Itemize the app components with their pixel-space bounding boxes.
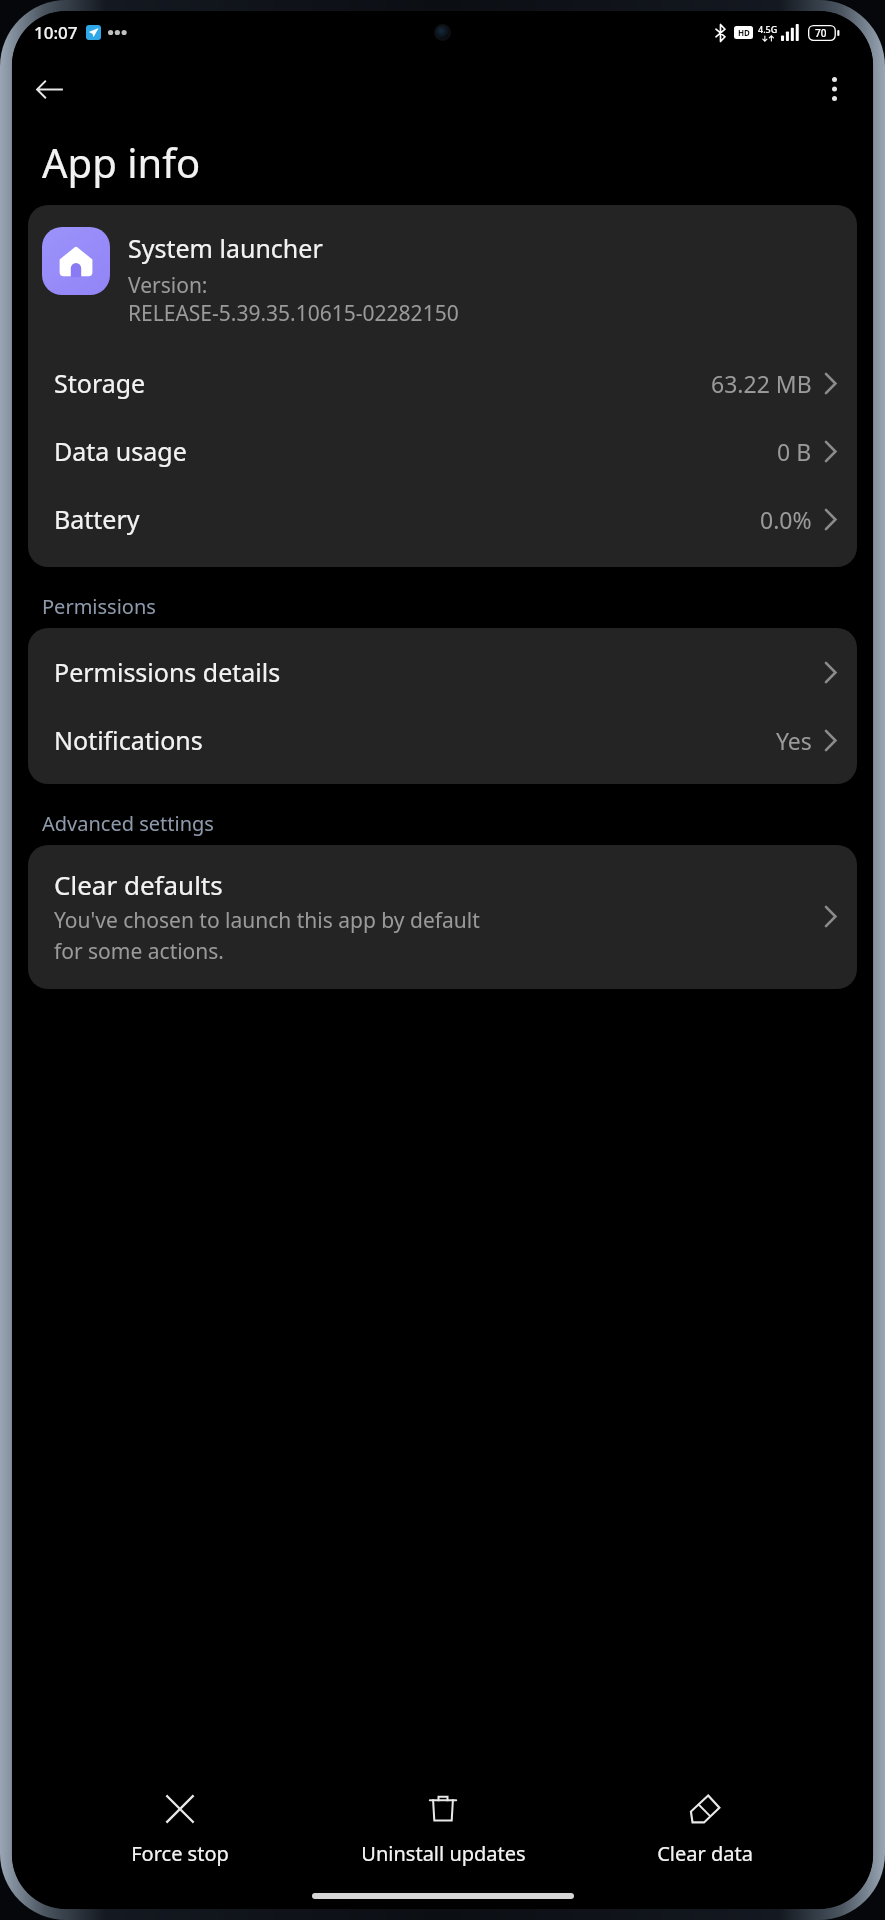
staticText: 0 B [777,436,812,467]
button[interactable]: More options [805,60,863,118]
staticText: Force stop [131,1840,229,1867]
staticText: 63.22 MB [711,368,812,399]
button[interactable]: Storage [28,349,857,417]
button[interactable]: Back [20,60,78,118]
staticText: Battery [54,502,140,536]
staticText: Permissions [42,593,156,620]
staticText: 4.5G [758,23,778,35]
staticText: Yes [776,725,812,756]
staticText: Notifications [54,723,203,757]
staticText: Data usage [54,434,187,468]
staticText: 70 [815,26,827,40]
button[interactable]: Uninstall updates [348,1782,538,1875]
staticText: Permissions details [54,655,281,689]
staticText: System launcher [128,231,323,265]
button[interactable]: Permissions details [28,638,857,706]
button[interactable]: Clear defaults [28,845,857,989]
button[interactable]: Notifications [28,706,857,774]
staticText: Clear data [657,1840,753,1867]
staticText: Uninstall updates [361,1840,526,1867]
staticText: 10:07 [34,21,78,44]
button[interactable]: Force stop [85,1782,275,1875]
button[interactable]: Battery [28,485,857,553]
staticText: Clear defaults [54,867,223,902]
staticText: App info [42,135,201,189]
button[interactable]: Clear data [610,1782,800,1875]
staticText: Storage [54,366,146,400]
button[interactable]: Data usage [28,417,857,485]
staticText: HD [738,27,750,38]
staticText: Advanced settings [42,810,214,837]
staticText: 0.0% [760,504,812,535]
staticText: Version: RELEASE-5.39.35.10615-02282150 [128,271,459,327]
staticText: You've chosen to launch this app by defa… [54,906,480,965]
